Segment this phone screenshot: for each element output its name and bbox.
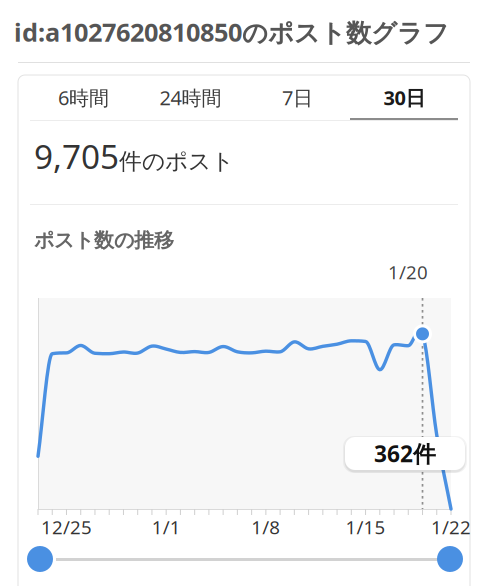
button[interactable]: 7日 <box>244 75 351 120</box>
button[interactable]: 30日 <box>351 75 458 120</box>
staticText: 1/1 <box>152 515 181 539</box>
staticText: 24時間 <box>159 84 221 111</box>
button[interactable]: Range end <box>437 546 463 572</box>
staticText: 1/22 <box>431 515 471 539</box>
staticText: 1/20 <box>388 260 428 284</box>
button[interactable]: 6時間 <box>30 75 137 120</box>
button[interactable]: Range start <box>27 546 53 572</box>
staticText: 30日 <box>383 84 425 111</box>
button[interactable]: 24時間 <box>137 75 244 120</box>
staticText: 362件 <box>374 438 436 468</box>
staticText: 7日 <box>282 84 313 111</box>
staticText: ポスト数の推移 <box>34 228 174 253</box>
staticText: 6時間 <box>58 84 109 111</box>
staticText: 9,705 <box>34 134 119 178</box>
staticText: 1/15 <box>346 515 386 539</box>
staticText: 件のポスト <box>119 147 234 175</box>
staticText: 1/8 <box>251 515 280 539</box>
staticText: id:a1027620810850のポスト数グラフ <box>14 15 449 49</box>
staticText: 12/25 <box>41 515 92 539</box>
